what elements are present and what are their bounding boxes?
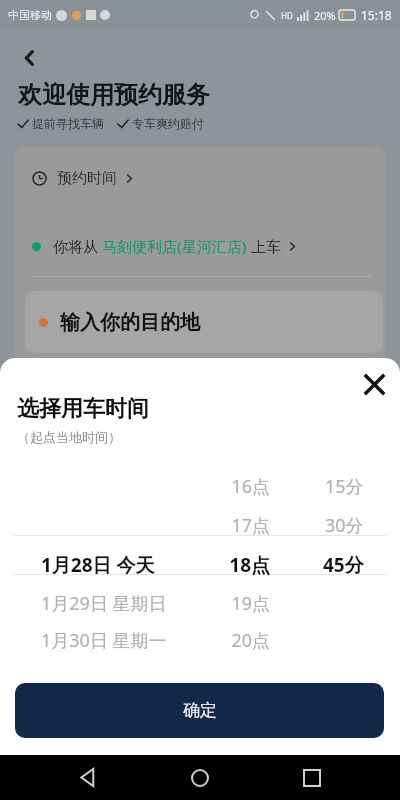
button[interactable]: 输入你的目的地 [25, 291, 383, 353]
staticText: 确定 [183, 700, 217, 721]
button[interactable]: 17点 [0, 506, 400, 545]
staticText: 选择用车时间 [17, 395, 149, 423]
button[interactable]: Back [64, 755, 112, 800]
staticText: 中国移动 [8, 8, 52, 22]
button[interactable]: 1月29日 星期日 [0, 584, 400, 623]
staticText: 30分 [325, 513, 364, 538]
staticText: 1月29日 星期日 [41, 591, 167, 616]
staticText: 16点 [0, 474, 270, 499]
staticText: 1月30日 星期一 [41, 628, 167, 653]
staticText: 18点 [0, 552, 270, 578]
button[interactable]: 预约时间 [14, 169, 386, 188]
button[interactable]: 1月28日 今天 [0, 545, 400, 584]
staticText: 20点 [0, 628, 270, 653]
staticText: 1月28日 今天 [41, 552, 155, 578]
button[interactable]: Home [176, 755, 224, 800]
button[interactable]: 你将从 [14, 236, 386, 256]
staticText: 20% [314, 8, 336, 23]
staticText: 15分 [325, 474, 364, 499]
staticText: 19点 [0, 591, 270, 616]
staticText: 45分 [323, 552, 364, 578]
staticText: 17点 [0, 513, 270, 538]
staticText: 提前寻找车辆 [32, 116, 104, 131]
staticText: （起点当地时间） [17, 429, 121, 445]
staticText: 上车 [247, 236, 281, 256]
staticText: 预约时间 [57, 169, 117, 188]
button[interactable]: 1月30日 星期一 [0, 623, 400, 657]
button[interactable]: Back [10, 38, 50, 78]
button[interactable]: Recents [288, 755, 336, 800]
button[interactable]: 16点 [0, 467, 400, 506]
staticText: 专车爽约赔付 [132, 116, 204, 131]
staticText: 输入你的目的地 [60, 310, 200, 335]
button[interactable]: Close [354, 364, 394, 404]
staticText: 欢迎使用预约服务 [18, 80, 210, 110]
staticText: HD [281, 10, 293, 21]
button[interactable]: 确定 [15, 683, 384, 738]
staticText: 你将从 [53, 236, 102, 256]
staticText: 15:18 [361, 7, 392, 23]
staticText: 马刻便利店(星河汇店) [102, 236, 247, 256]
